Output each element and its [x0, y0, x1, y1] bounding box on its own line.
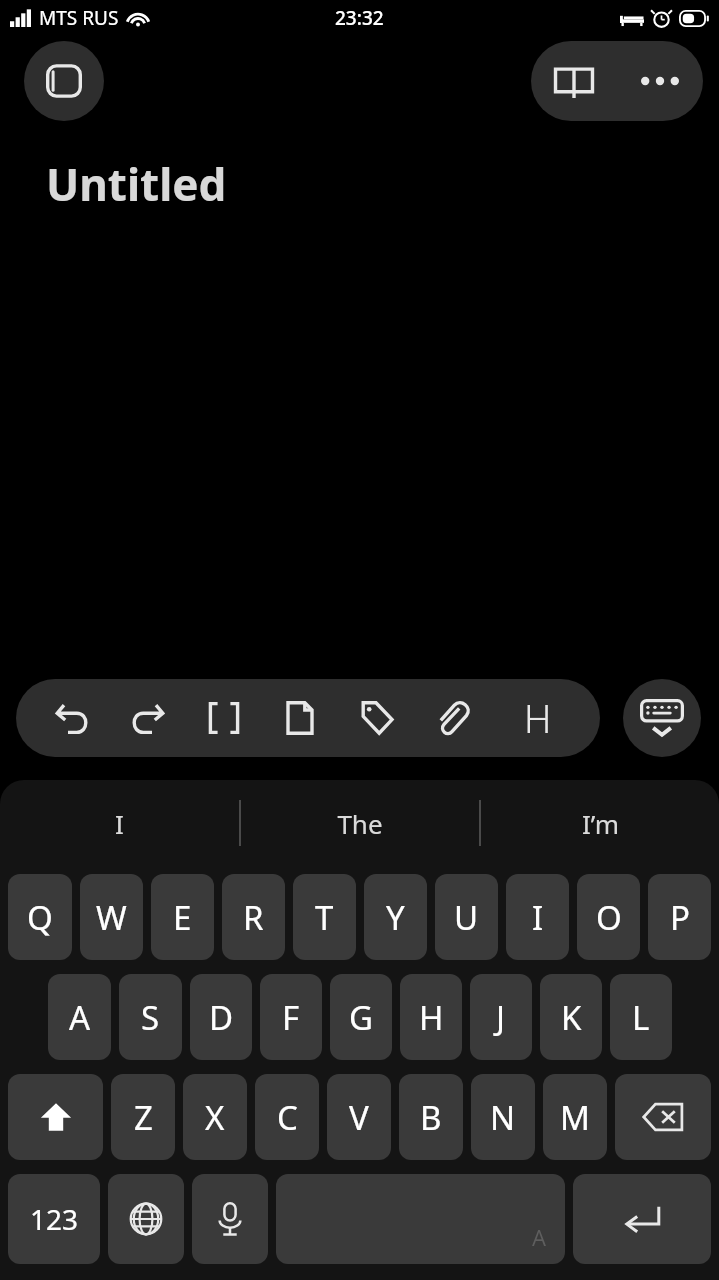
button[interactable]: I [0, 780, 239, 866]
button[interactable]: Undo [40, 686, 104, 750]
staticText: Untitled [46, 154, 227, 214]
button[interactable]: Y [364, 874, 427, 960]
staticText: F [282, 995, 300, 1040]
button[interactable]: B [582, 686, 600, 750]
button[interactable]: S [119, 974, 182, 1060]
staticText: 123 [30, 1200, 79, 1238]
button[interactable]: Insert file [268, 686, 332, 750]
button[interactable]: J [470, 974, 532, 1060]
button[interactable]: Shift [8, 1074, 103, 1160]
staticText: U [454, 895, 479, 940]
button[interactable]: V [327, 1074, 391, 1160]
button[interactable]: M [543, 1074, 607, 1160]
staticText: MTS RUS [39, 5, 119, 31]
button[interactable]: Change language [108, 1174, 184, 1264]
button[interactable]: I’m [481, 780, 719, 866]
staticText: Y [386, 895, 405, 940]
staticText: S [141, 995, 160, 1040]
staticText: N [490, 1095, 516, 1140]
button[interactable]: Voice input [192, 1174, 268, 1264]
staticText: J [496, 995, 506, 1040]
button[interactable]: Z [111, 1074, 175, 1160]
button[interactable]: Reading mode [531, 41, 617, 121]
button[interactable]: Brackets [192, 686, 256, 750]
button[interactable]: H [400, 974, 462, 1060]
button[interactable]: E [151, 874, 214, 960]
staticText: G [349, 995, 374, 1040]
button[interactable]: Attach [420, 686, 484, 750]
staticText: B [420, 1095, 442, 1140]
staticText: A [69, 995, 91, 1040]
staticText: The [337, 806, 383, 841]
button[interactable]: G [330, 974, 392, 1060]
button[interactable]: Hide keyboard [623, 679, 701, 757]
staticText: P [670, 895, 690, 940]
staticText: O [596, 895, 622, 940]
button[interactable]: The [241, 780, 479, 866]
staticText: C [277, 1095, 298, 1140]
staticText: T [315, 895, 334, 940]
button[interactable]: Tag [344, 686, 408, 750]
staticText: I [115, 806, 124, 841]
button[interactable]: U [435, 874, 498, 960]
button[interactable]: N [471, 1074, 535, 1160]
button[interactable]: K [540, 974, 602, 1060]
button[interactable]: 123 [8, 1174, 100, 1264]
button[interactable]: O [577, 874, 640, 960]
button[interactable]: Enter [573, 1174, 711, 1264]
staticText: K [561, 995, 582, 1040]
button[interactable]: Q [8, 874, 72, 960]
button[interactable]: Toggle sidebar [24, 41, 104, 121]
button[interactable]: D [190, 974, 252, 1060]
button[interactable]: W [80, 874, 143, 960]
button[interactable]: F [260, 974, 322, 1060]
button[interactable]: H [506, 686, 570, 750]
staticText: Z [134, 1095, 153, 1140]
staticText: W [96, 895, 127, 940]
button[interactable]: I [506, 874, 569, 960]
button[interactable]: L [610, 974, 672, 1060]
staticText: Q [27, 895, 53, 940]
button[interactable]: B [399, 1074, 463, 1160]
staticText: I’m [582, 806, 619, 841]
button[interactable]: T [293, 874, 356, 960]
staticText: 23:32 [335, 5, 384, 31]
button[interactable]: A [48, 974, 111, 1060]
staticText: D [209, 995, 234, 1040]
button[interactable]: P [648, 874, 711, 960]
staticText: R [243, 895, 264, 940]
staticText: I [532, 895, 544, 940]
button[interactable]: X [183, 1074, 247, 1160]
staticText: A [532, 1222, 547, 1252]
button[interactable]: More options [617, 41, 703, 121]
staticText: H [524, 692, 552, 744]
button[interactable]: Backspace [615, 1074, 711, 1160]
staticText: V [349, 1095, 369, 1140]
staticText: L [632, 995, 650, 1040]
staticText: M [560, 1095, 590, 1140]
button[interactable]: Redo [116, 686, 180, 750]
button[interactable]: C [255, 1074, 319, 1160]
button[interactable]: R [222, 874, 285, 960]
staticText: H [419, 995, 444, 1040]
staticText: E [173, 895, 192, 940]
staticText: X [205, 1095, 225, 1140]
